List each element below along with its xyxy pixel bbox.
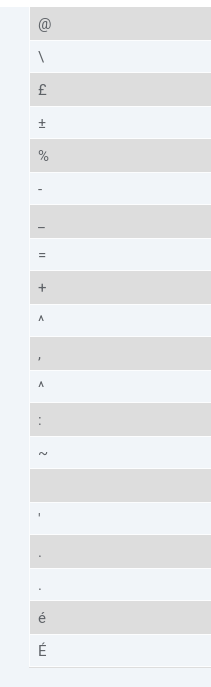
button[interactable]: ±: [29, 106, 211, 139]
button[interactable]: _: [29, 205, 211, 238]
button[interactable]: =: [29, 238, 211, 271]
staticText: é: [38, 609, 46, 627]
button[interactable]: É: [29, 634, 211, 667]
button[interactable]: :: [29, 403, 211, 436]
staticText: .: [38, 576, 42, 594]
staticText: -: [38, 180, 43, 198]
staticText: :: [38, 411, 42, 429]
button[interactable]: .: [29, 568, 211, 601]
button[interactable]: ~: [29, 436, 211, 469]
staticText: ~: [38, 444, 49, 462]
staticText: ': [38, 510, 41, 528]
staticText: £: [38, 81, 47, 99]
staticText: _: [38, 213, 45, 231]
staticText: =: [38, 246, 47, 264]
staticText: ^: [38, 312, 45, 330]
staticText: É: [38, 642, 47, 660]
button[interactable]: %: [29, 139, 211, 172]
staticText: ,: [38, 345, 41, 363]
button[interactable]: £: [29, 73, 211, 106]
button[interactable]: +: [29, 271, 211, 304]
staticText: \: [38, 48, 45, 66]
button[interactable]: \: [29, 40, 211, 73]
staticText: ±: [38, 114, 47, 132]
staticText: %: [38, 147, 49, 165]
button[interactable]: ^: [29, 304, 211, 337]
button[interactable]: ,: [29, 337, 211, 370]
button[interactable]: -: [29, 172, 211, 205]
button[interactable]: ^: [29, 370, 211, 403]
staticText: @: [38, 15, 52, 33]
button[interactable]: @: [29, 7, 211, 40]
staticText: +: [38, 279, 47, 297]
staticText: ^: [38, 378, 45, 396]
button[interactable]: ': [29, 502, 211, 535]
button[interactable]: é: [29, 601, 211, 634]
staticText: .: [38, 543, 42, 561]
